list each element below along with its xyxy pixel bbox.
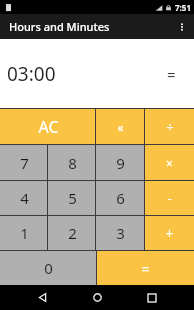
staticText: = [167, 64, 176, 84]
button[interactable]: 9 [96, 145, 145, 180]
button[interactable]: ÷ [145, 109, 194, 144]
button[interactable]: « [96, 109, 145, 144]
button[interactable]: 6 [96, 181, 145, 215]
staticText: 6 [116, 188, 125, 208]
staticText: « [117, 119, 124, 135]
button[interactable]: 8 [48, 145, 96, 180]
staticText: 7 [20, 153, 29, 173]
button[interactable]: 4 [0, 181, 48, 215]
staticText: ÷ [166, 118, 174, 136]
staticText: 3 [116, 223, 125, 243]
button[interactable]: = [97, 251, 194, 285]
button[interactable]: 0 [0, 251, 97, 285]
button[interactable]: + [145, 216, 194, 250]
staticText: 8 [68, 153, 77, 173]
button[interactable]: 1 [0, 216, 48, 250]
button[interactable]: 2 [48, 216, 96, 250]
button[interactable]: 7 [0, 145, 48, 180]
button[interactable]: × [145, 145, 194, 180]
button[interactable]: AC [0, 109, 96, 144]
staticText: - [167, 189, 172, 207]
staticText: 4 [20, 188, 29, 208]
staticText: × [166, 155, 173, 171]
button[interactable]: Recent apps [139, 285, 165, 310]
staticText: AC [38, 116, 59, 138]
button[interactable]: More options [170, 14, 194, 39]
staticText: 9 [116, 153, 125, 173]
button[interactable]: - [145, 181, 194, 215]
staticText: 2 [68, 223, 77, 243]
staticText: = [141, 259, 150, 278]
button[interactable]: Back [29, 285, 55, 310]
staticText: 03:00 [7, 61, 56, 87]
staticText: Hours and Minutes [9, 19, 110, 34]
staticText: 7:51 [175, 2, 191, 13]
staticText: 0 [44, 258, 53, 278]
staticText: 5 [68, 188, 77, 208]
button[interactable]: 3 [96, 216, 145, 250]
staticText: + [165, 224, 174, 243]
staticText: 1 [20, 223, 29, 243]
button[interactable]: Home [84, 285, 110, 310]
button[interactable]: 5 [48, 181, 96, 215]
